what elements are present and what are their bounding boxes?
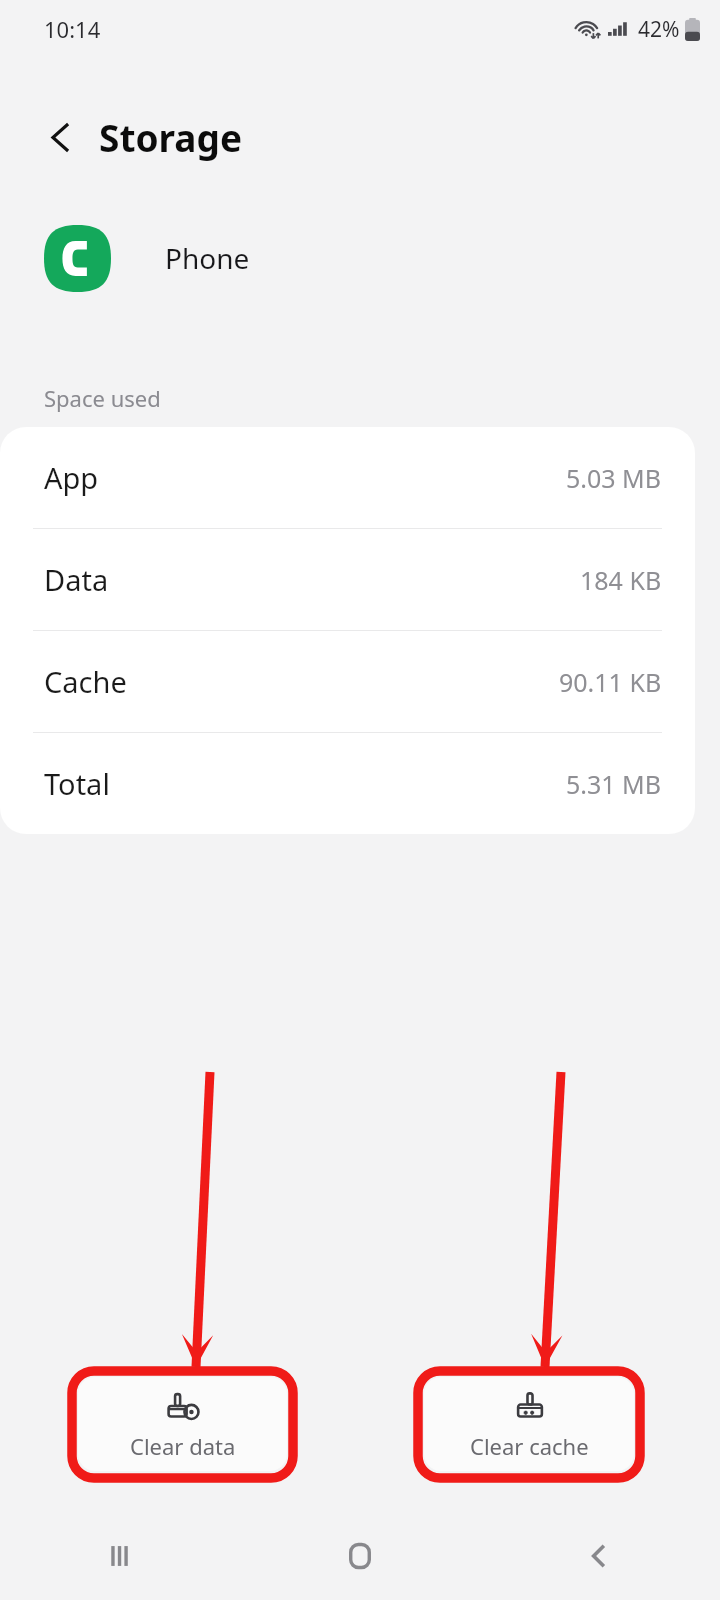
staticText: Phone [165,239,250,277]
staticText: 10:14 [44,14,101,44]
button[interactable]: Back [480,1512,720,1600]
staticText: 5.31 MB [566,767,662,801]
staticText: Space used [44,383,161,413]
button[interactable]: Total [0,733,695,834]
staticText: 42% [638,15,680,44]
staticText: 5.03 MB [566,461,662,495]
staticText: Cache [44,662,127,701]
staticText: Total [44,764,110,803]
staticText: Data [44,560,109,599]
button[interactable]: Clear cache [424,1377,634,1471]
button[interactable]: Cache [0,631,695,732]
staticText: Clear data [130,1431,236,1461]
staticText: Storage [99,112,243,162]
button[interactable]: Back [34,110,88,164]
button[interactable]: App [0,427,695,528]
button[interactable]: Data [0,529,695,630]
staticText: App [44,458,99,497]
staticText: Clear cache [470,1431,589,1461]
staticText: 90.11 KB [559,665,662,699]
button[interactable]: Home [240,1512,480,1600]
staticText: 184 KB [580,563,662,597]
button[interactable]: Clear data [78,1377,287,1471]
button[interactable]: Recents [0,1512,240,1600]
